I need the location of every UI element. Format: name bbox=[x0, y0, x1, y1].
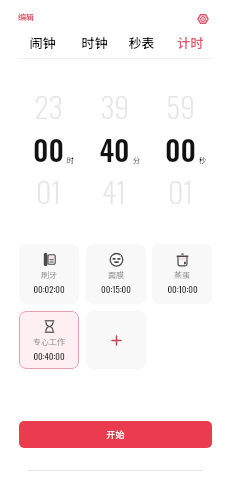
staticText: 时钟 bbox=[81, 33, 108, 52]
button[interactable]: 开始 bbox=[19, 421, 212, 448]
staticText: 23 bbox=[34, 84, 63, 124]
staticText: 计时 bbox=[177, 33, 204, 52]
button[interactable]: 时钟 bbox=[77, 31, 111, 53]
button[interactable]: 秒表 bbox=[124, 31, 158, 53]
button[interactable]: 刷牙 bbox=[19, 244, 79, 304]
staticText: 时 bbox=[67, 155, 74, 165]
staticText: 00:40:00 bbox=[33, 349, 65, 360]
staticText: 蒸蛋 bbox=[174, 269, 190, 279]
staticText: 闹钟 bbox=[29, 33, 56, 52]
staticText: 40 bbox=[99, 127, 130, 167]
button[interactable]: Settings bbox=[194, 10, 211, 27]
button[interactable]: 闹钟 bbox=[25, 31, 59, 53]
staticText: 01 bbox=[168, 169, 193, 209]
staticText: 刷牙 bbox=[41, 269, 57, 279]
staticText: 39 bbox=[100, 84, 129, 124]
button[interactable]: 面膜 bbox=[86, 244, 146, 304]
staticText: 01 bbox=[36, 169, 61, 209]
button[interactable]: Add timer bbox=[86, 311, 146, 369]
button[interactable]: 专心工作 bbox=[19, 311, 79, 369]
staticText: 00:15:00 bbox=[101, 282, 131, 293]
staticText: 开始 bbox=[106, 428, 125, 441]
staticText: 41 bbox=[102, 169, 126, 209]
staticText: 分 bbox=[133, 155, 140, 165]
staticText: 59 bbox=[166, 84, 195, 124]
staticText: 00 bbox=[33, 127, 64, 167]
staticText: 秒表 bbox=[128, 33, 155, 52]
button[interactable]: 蒸蛋 bbox=[152, 244, 212, 304]
staticText: 面膜 bbox=[108, 269, 124, 279]
staticText: 秒 bbox=[199, 155, 206, 165]
button[interactable]: 编辑 bbox=[14, 8, 38, 26]
button[interactable]: 计时 bbox=[173, 31, 207, 53]
staticText: 专心工作 bbox=[33, 336, 65, 346]
staticText: 00:10:00 bbox=[167, 282, 198, 293]
staticText: 编辑 bbox=[18, 11, 34, 23]
staticText: 00:02:00 bbox=[33, 282, 65, 293]
staticText: 00 bbox=[165, 127, 196, 167]
